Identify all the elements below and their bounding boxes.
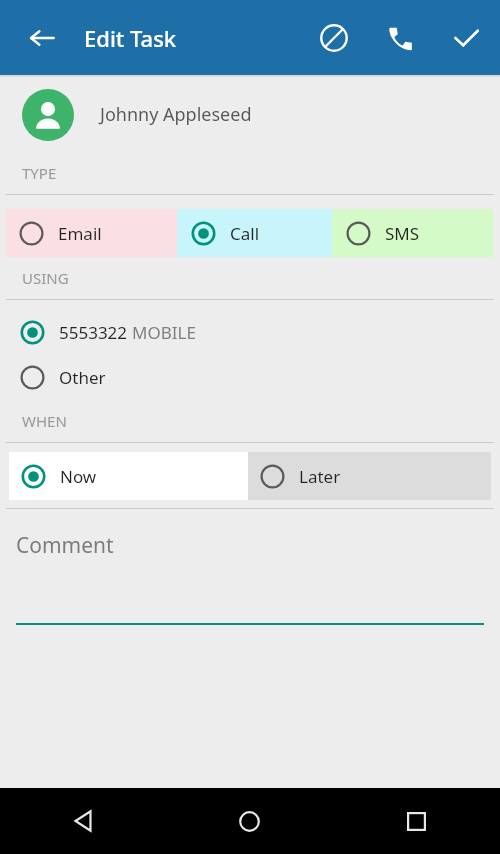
staticText: Email <box>58 222 102 245</box>
button[interactable]: Later <box>248 452 491 500</box>
button[interactable]: Save <box>442 14 490 62</box>
button[interactable]: Home <box>166 788 333 854</box>
button[interactable]: 5553322 <box>0 310 500 355</box>
button[interactable]: Block <box>310 14 358 62</box>
staticText: TYPE <box>22 163 57 183</box>
button[interactable]: Other <box>0 355 500 400</box>
button[interactable]: Back <box>18 14 66 62</box>
staticText: USING <box>22 268 69 288</box>
staticText: SMS <box>385 222 420 245</box>
button[interactable]: Comment <box>0 509 500 625</box>
button[interactable]: Now <box>9 452 248 500</box>
staticText: WHEN <box>22 411 67 431</box>
staticText: Later <box>299 465 341 488</box>
staticText: Now <box>60 465 97 488</box>
staticText: Johnny Appleseed <box>100 102 252 127</box>
button[interactable]: Call <box>376 14 424 62</box>
button[interactable]: Call <box>177 209 332 257</box>
staticText: 5553322 <box>59 321 132 344</box>
staticText: Comment <box>16 531 114 560</box>
button[interactable]: Back <box>0 788 166 854</box>
staticText: Edit Task <box>84 23 177 53</box>
button[interactable]: SMS <box>332 209 493 257</box>
button[interactable]: Email <box>5 209 177 257</box>
staticText: Call <box>230 222 260 245</box>
staticText: MOBILE <box>132 321 196 344</box>
staticText: Other <box>59 366 106 389</box>
button[interactable]: Recents <box>333 788 500 854</box>
